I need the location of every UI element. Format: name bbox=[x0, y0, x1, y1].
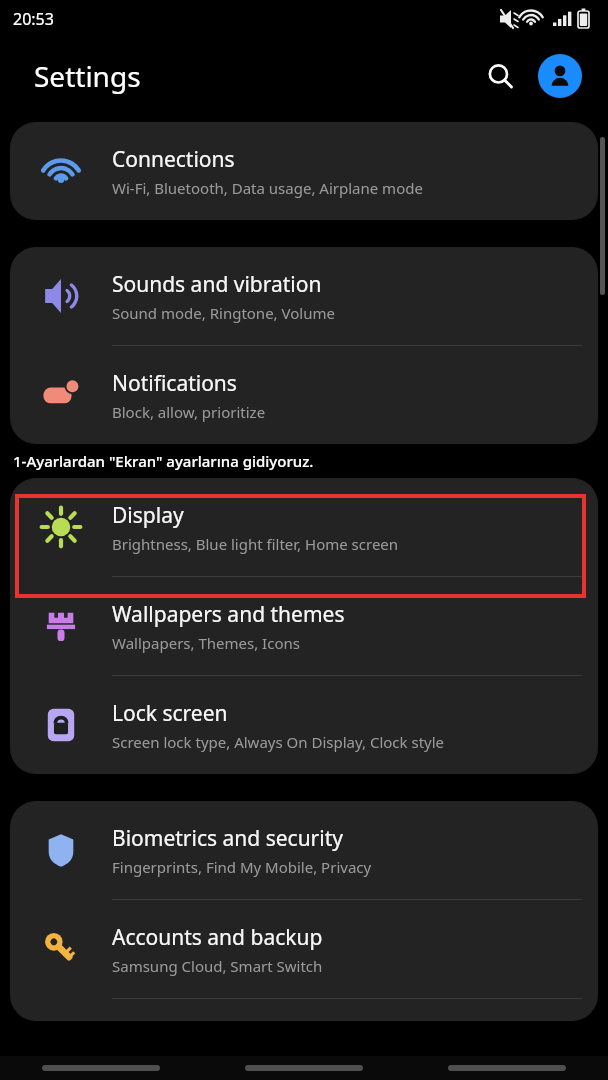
staticText: Wallpapers, Themes, Icons bbox=[112, 633, 300, 653]
staticText: Notifications bbox=[112, 369, 237, 398]
staticText: Fingerprints, Find My Mobile, Privacy bbox=[112, 857, 372, 877]
staticText: 1-Ayarlardan "Ekran" ayarlarına gidiyoru… bbox=[13, 451, 314, 471]
button[interactable]: Wallpapers and themes bbox=[10, 577, 598, 675]
staticText: Settings bbox=[34, 57, 141, 95]
button[interactable]: Connections bbox=[10, 122, 598, 220]
staticText: Block, allow, prioritize bbox=[112, 402, 266, 422]
button[interactable]: Sounds and vibration bbox=[10, 247, 598, 345]
button[interactable]: Back bbox=[405, 1056, 608, 1080]
staticText: Wi-Fi, Bluetooth, Data usage, Airplane m… bbox=[112, 178, 423, 198]
button[interactable]: Recents bbox=[0, 1056, 202, 1080]
staticText: Wallpapers and themes bbox=[112, 600, 345, 629]
button[interactable]: Biometrics and security bbox=[10, 801, 598, 899]
button[interactable]: Account bbox=[538, 54, 582, 98]
staticText: Accounts and backup bbox=[112, 923, 323, 952]
staticText: Lock screen bbox=[112, 699, 228, 728]
button[interactable]: Home bbox=[202, 1056, 405, 1080]
staticText: Sound mode, Ringtone, Volume bbox=[112, 303, 335, 323]
staticText: Brightness, Blue light filter, Home scre… bbox=[112, 534, 399, 554]
staticText: Samsung Cloud, Smart Switch bbox=[112, 956, 323, 976]
button[interactable]: Search bbox=[476, 52, 524, 100]
staticText: Display bbox=[112, 501, 184, 530]
staticText: 20:53 bbox=[13, 8, 54, 30]
staticText: Screen lock type, Always On Display, Clo… bbox=[112, 732, 445, 752]
staticText: Biometrics and security bbox=[112, 824, 343, 853]
button[interactable]: Notifications bbox=[10, 346, 598, 444]
button[interactable]: Display bbox=[10, 478, 598, 576]
button[interactable]: Accounts and backup bbox=[10, 900, 598, 998]
button[interactable]: Lock screen bbox=[10, 676, 598, 774]
staticText: Connections bbox=[112, 145, 235, 174]
staticText: Sounds and vibration bbox=[112, 270, 322, 299]
